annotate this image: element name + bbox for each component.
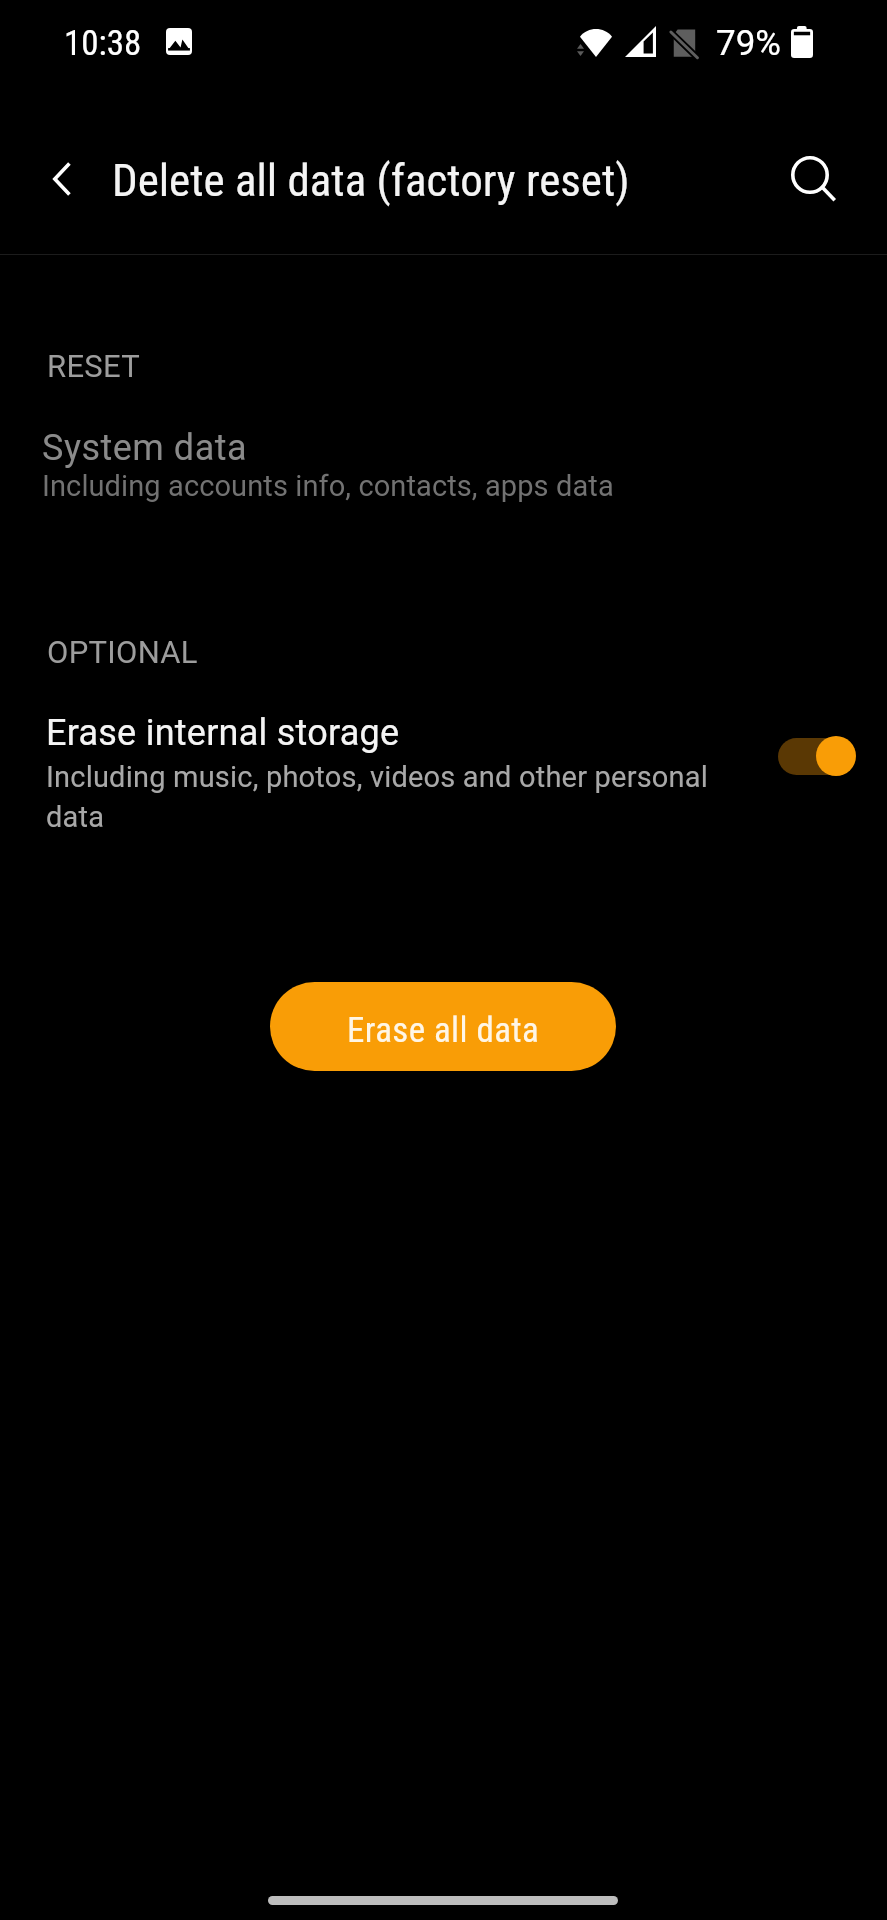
staticText: System data bbox=[42, 427, 248, 469]
staticText: Including accounts info, contacts, apps … bbox=[42, 469, 614, 503]
button[interactable]: Erase internal storage bbox=[0, 695, 887, 853]
button[interactable]: System data bbox=[0, 410, 887, 521]
staticText: Erase all data bbox=[347, 1010, 540, 1051]
staticText: 10:38 bbox=[64, 23, 142, 64]
staticText: OPTIONAL bbox=[47, 634, 198, 670]
staticText: Erase internal storage bbox=[46, 712, 400, 754]
button[interactable]: Back bbox=[26, 144, 96, 214]
staticText: Including music, photos, videos and othe… bbox=[46, 760, 711, 835]
button[interactable]: Search bbox=[775, 140, 845, 210]
staticText: 79% bbox=[716, 23, 781, 64]
staticText: Delete all data (factory reset) bbox=[112, 154, 630, 207]
staticText: RESET bbox=[47, 348, 141, 384]
button[interactable]: Erase all data bbox=[270, 982, 616, 1071]
button[interactable]: Erase internal storage, on bbox=[777, 735, 856, 777]
